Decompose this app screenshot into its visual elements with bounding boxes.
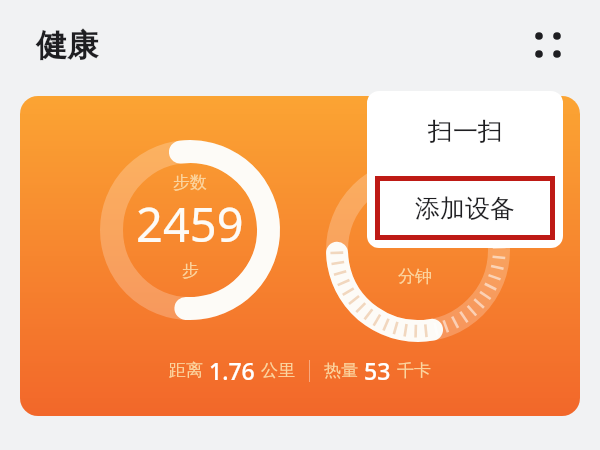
button[interactable]: 步数: [20, 96, 580, 416]
staticText: 53: [358, 355, 397, 386]
staticText: 扫一扫: [428, 116, 503, 147]
staticText: 分钟: [398, 266, 432, 287]
staticText: 公里: [261, 360, 295, 381]
staticText: 2459: [136, 192, 244, 256]
button[interactable]: 添加设备: [380, 181, 550, 235]
button[interactable]: 扫一扫: [367, 91, 563, 171]
staticText: 1.76: [203, 355, 261, 386]
staticText: 热量: [324, 360, 358, 381]
staticText: 添加设备: [415, 193, 515, 224]
staticText: 健康: [36, 26, 98, 65]
staticText: 步数: [173, 172, 207, 193]
staticText: 距离: [169, 360, 203, 381]
staticText: 千卡: [397, 360, 431, 381]
staticText: 步: [182, 260, 199, 281]
button[interactable]: More options: [524, 21, 572, 69]
